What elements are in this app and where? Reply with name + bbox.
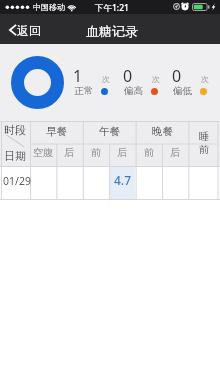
staticText: 正常 (74, 85, 93, 97)
button[interactable]: 0 (120, 62, 162, 100)
staticText: 后 (170, 146, 180, 159)
button[interactable]: 1 (70, 62, 112, 100)
staticText: 返回 (17, 23, 41, 38)
other: Location (173, 3, 180, 10)
other: Alarm (181, 2, 189, 10)
staticText: 后 (117, 146, 127, 159)
staticText: 前 (144, 146, 154, 159)
staticText: 前 (199, 143, 209, 156)
staticText: 次 (152, 74, 160, 84)
staticText: 中国移动 (33, 2, 65, 12)
staticText: 次 (102, 74, 110, 84)
staticText: 01/29 (3, 174, 31, 188)
staticText: 下午1:21 (95, 2, 129, 14)
staticText: 0 (172, 65, 182, 87)
staticText: 前 (91, 146, 101, 159)
staticText: 1 (73, 65, 83, 87)
staticText: 晚餐 (152, 125, 173, 138)
staticText: 早餐 (46, 125, 67, 138)
button[interactable]: 0 (169, 62, 211, 100)
staticText: 0 (123, 65, 133, 87)
staticText: 后 (64, 146, 74, 159)
button[interactable] (0, 14, 46, 44)
button[interactable] (109, 166, 135, 199)
staticText: 偏高 (124, 85, 143, 97)
staticText: 4.7 (114, 172, 131, 188)
staticText: 空腹 (33, 146, 53, 159)
staticText: 血糖记录 (86, 23, 138, 39)
staticText: 时段 (4, 123, 26, 137)
staticText: 偏低 (173, 85, 192, 97)
staticText: 日期 (4, 149, 26, 163)
staticText: 睡 (199, 130, 209, 143)
staticText: 午餐 (99, 125, 120, 138)
staticText: 次 (201, 74, 209, 84)
